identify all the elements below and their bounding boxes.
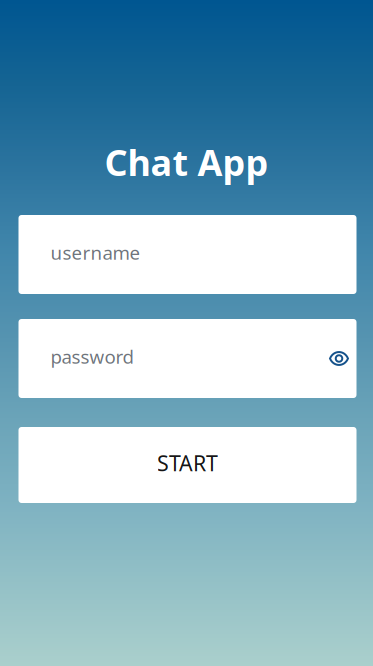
button[interactable]: password bbox=[18, 319, 327, 398]
button[interactable]: username bbox=[17, 215, 355, 294]
staticText: password bbox=[50, 344, 133, 369]
staticText: Chat App bbox=[104, 138, 268, 186]
button[interactable]: Show password bbox=[327, 319, 356, 398]
staticText: START bbox=[157, 449, 218, 477]
button[interactable]: START bbox=[17, 427, 355, 503]
staticText: username bbox=[50, 240, 140, 265]
